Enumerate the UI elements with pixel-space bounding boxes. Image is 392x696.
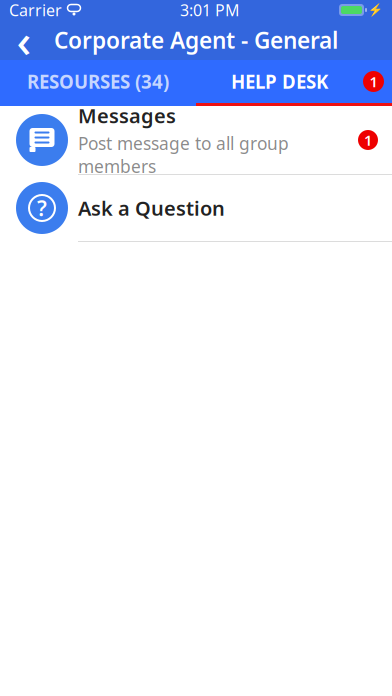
staticText: 1 xyxy=(364,130,372,150)
staticText: Post message to all group members xyxy=(78,132,289,178)
staticText: ‹ xyxy=(16,10,31,70)
staticText: Messages xyxy=(78,102,176,129)
staticText: ⚡ xyxy=(368,3,383,17)
staticText: ? xyxy=(37,194,47,222)
staticText: 3:01 PM xyxy=(180,0,240,21)
staticText: Corporate Agent - General xyxy=(54,25,338,55)
staticText: 1 xyxy=(369,72,377,91)
button[interactable]: HELP DESK xyxy=(196,60,392,103)
staticText: HELP DESK xyxy=(231,69,328,94)
button[interactable]: Messages xyxy=(0,106,392,174)
staticText: RESOURSES (34) xyxy=(27,69,169,94)
button[interactable]: RESOURSES (34) xyxy=(0,60,196,103)
button[interactable]: Back xyxy=(0,20,48,60)
staticText: Carrier xyxy=(9,0,62,21)
button[interactable]: ? xyxy=(0,175,392,241)
staticText: Ask a Question xyxy=(78,195,225,221)
